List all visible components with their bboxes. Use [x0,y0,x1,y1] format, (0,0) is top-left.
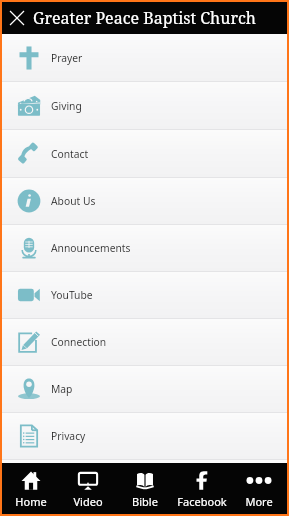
staticText: Facebook [177,494,227,509]
button[interactable]: About Us [2,178,287,224]
staticText: Map [51,382,73,396]
staticText: Giving [51,99,82,113]
staticText: Video [73,494,103,509]
button[interactable]: Close [2,3,32,33]
staticText: Privacy [51,429,86,443]
staticText: More [245,494,273,509]
staticText: Contact [51,147,89,161]
button[interactable]: Facebook [173,463,230,514]
staticText: Prayer [51,51,83,65]
button[interactable]: YouTube [2,272,287,318]
button[interactable]: Prayer [2,34,287,81]
button[interactable]: Bible [116,463,173,514]
button[interactable]: Contact [2,130,287,177]
staticText: Connection [51,335,107,349]
staticText: YouTube [51,288,93,302]
button[interactable]: Video [59,463,116,514]
button[interactable]: More [230,463,287,514]
staticText: Greater Peace Baptist Church [33,7,257,29]
staticText: Announcements [51,241,131,255]
button[interactable]: Giving [2,82,287,129]
button[interactable]: Announcements [2,225,287,271]
button[interactable]: Connection [2,319,287,365]
staticText: Home [15,494,47,509]
button[interactable]: Privacy [2,413,287,459]
staticText: Bible [132,494,158,509]
button[interactable]: Home [2,463,59,514]
staticText: About Us [51,194,96,208]
button[interactable]: Map [2,366,287,412]
